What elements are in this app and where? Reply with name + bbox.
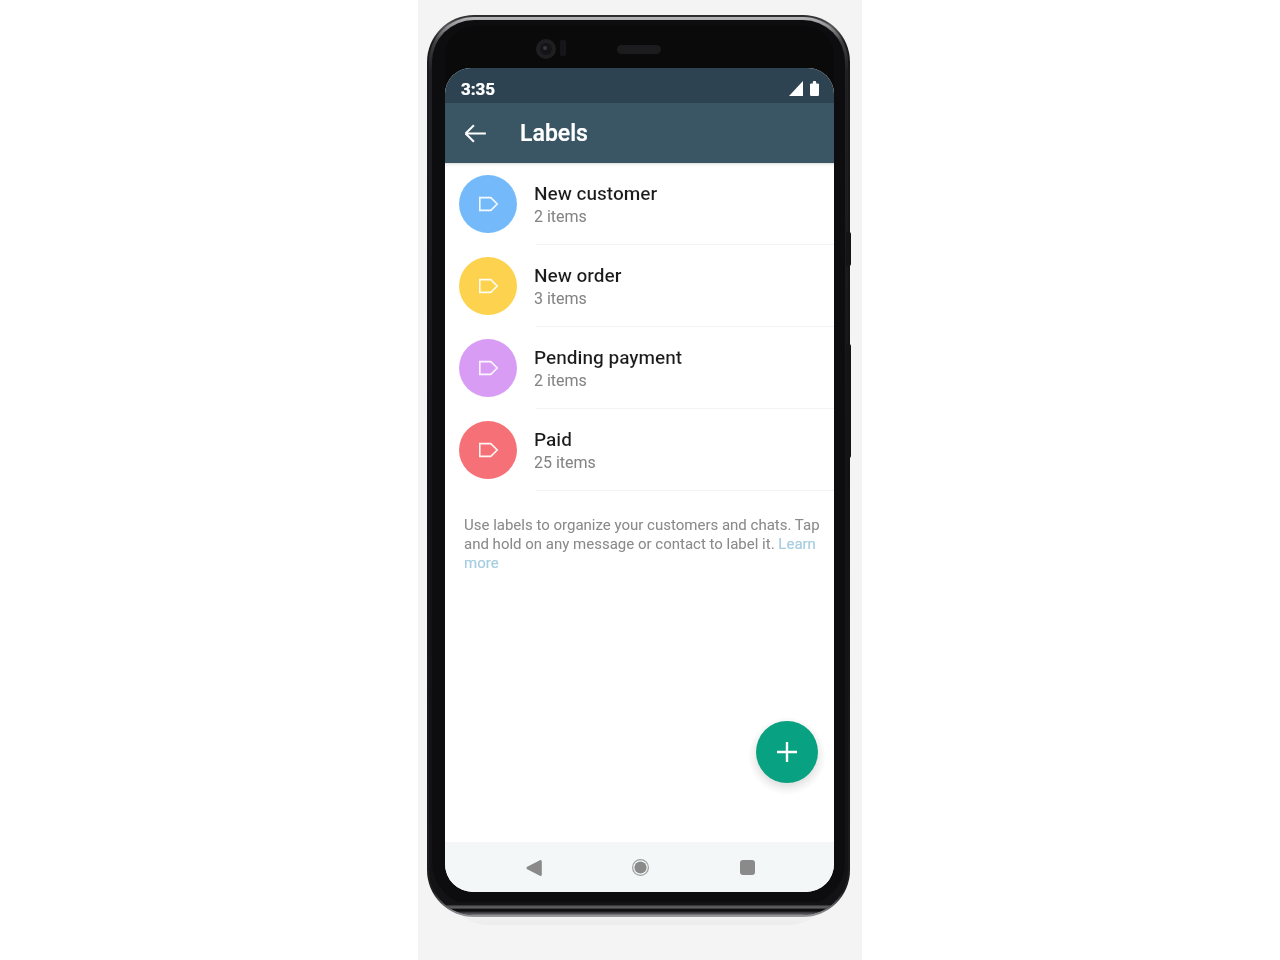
button[interactable]: Add label	[756, 721, 818, 783]
staticText: 25 items	[534, 453, 596, 472]
button[interactable]: New order	[445, 245, 834, 327]
staticText: 3 items	[534, 289, 587, 308]
button[interactable]: Paid	[445, 409, 834, 491]
button[interactable]: Recent apps	[725, 845, 770, 890]
staticText: Pending payment	[534, 346, 683, 368]
staticText: 2 items	[534, 371, 587, 390]
button[interactable]: Home	[618, 845, 663, 890]
staticText: Labels	[520, 120, 588, 147]
staticText: 2 items	[534, 207, 587, 226]
button[interactable]: Back	[511, 845, 556, 890]
staticText: 3:35	[461, 79, 496, 99]
button[interactable]: New customer	[445, 163, 834, 245]
button[interactable]: Back	[452, 110, 498, 156]
staticText: New order	[534, 264, 622, 286]
staticText: Paid	[534, 428, 572, 450]
staticText: New customer	[534, 182, 658, 204]
staticText: Use labels to organize your customers an…	[464, 516, 828, 572]
button[interactable]: Pending payment	[445, 327, 834, 409]
